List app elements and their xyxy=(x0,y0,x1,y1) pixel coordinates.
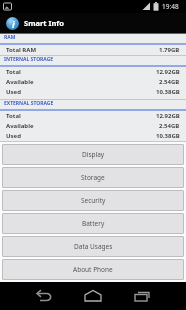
staticText: 1.79GB xyxy=(159,46,180,54)
staticText: Available xyxy=(6,78,34,86)
staticText: Security xyxy=(81,196,106,205)
staticText: 12.92GB xyxy=(156,112,180,120)
staticText: 2.54GB xyxy=(159,122,180,130)
button[interactable] xyxy=(119,282,165,310)
button[interactable]: Display xyxy=(2,144,184,165)
staticText: Total xyxy=(6,68,21,76)
button[interactable]: Storage xyxy=(2,167,184,188)
staticText: Used xyxy=(6,132,21,140)
staticText: i xyxy=(12,18,15,28)
staticText: Battery xyxy=(82,219,105,228)
staticText: 19:48 xyxy=(162,2,179,11)
staticText: Total xyxy=(6,112,21,120)
staticText: RAM xyxy=(4,34,16,41)
staticText: Used xyxy=(6,88,21,96)
button[interactable]: About Phone xyxy=(2,259,184,280)
button[interactable]: Data Usages xyxy=(2,236,184,257)
staticText: Smart Info xyxy=(24,18,64,28)
staticText: 10.38GB xyxy=(156,88,180,96)
staticText: Display xyxy=(82,150,105,159)
staticText: Storage xyxy=(81,173,105,182)
staticText: INTERNAL STORAGE xyxy=(4,56,54,63)
staticText: Total RAM xyxy=(6,46,37,54)
button[interactable]: Battery xyxy=(2,213,184,234)
staticText: EXTERNAL STORAGE xyxy=(4,100,54,107)
staticText: Available xyxy=(6,122,34,130)
button[interactable] xyxy=(21,282,67,310)
button[interactable] xyxy=(70,282,116,310)
staticText: 12.92GB xyxy=(156,68,180,76)
staticText: 10.38GB xyxy=(156,132,180,140)
staticText: Data Usages xyxy=(74,242,113,251)
staticText: 2.54GB xyxy=(159,78,180,86)
button[interactable]: Security xyxy=(2,190,184,211)
staticText: About Phone xyxy=(73,265,113,274)
